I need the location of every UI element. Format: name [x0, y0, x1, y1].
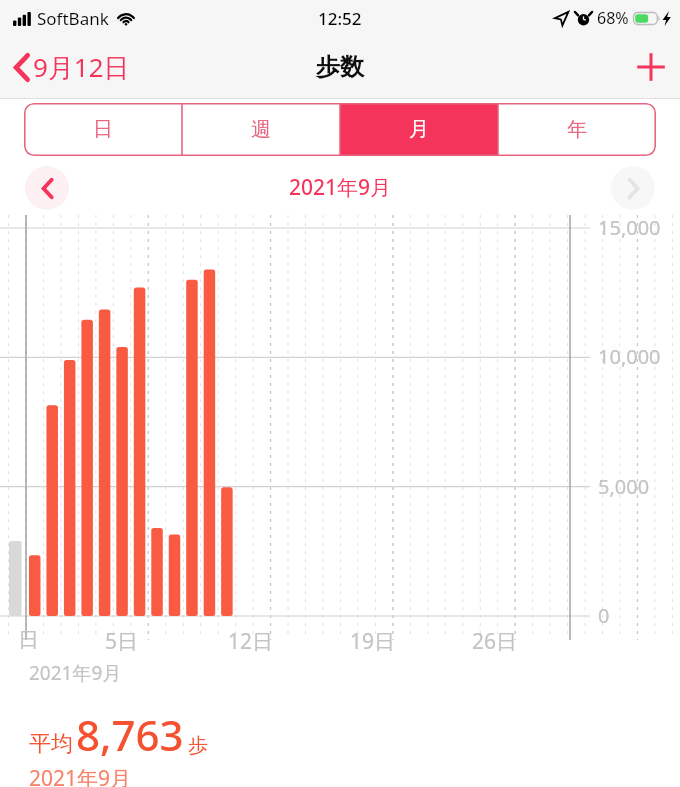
button[interactable]: 月 — [340, 103, 498, 156]
staticText: 12:52 — [318, 7, 362, 30]
button[interactable]: 週 — [182, 103, 340, 156]
staticText: SoftBank — [37, 7, 109, 30]
staticText: 15,000 — [598, 214, 661, 241]
staticText: 19日 — [350, 627, 396, 656]
staticText: 26日 — [472, 627, 518, 656]
staticText: 9月12日 — [33, 49, 130, 85]
button[interactable]: 日 — [24, 103, 182, 156]
staticText: 年 — [567, 117, 587, 142]
staticText: 5,000 — [598, 473, 650, 500]
staticText: 日 — [18, 627, 39, 653]
button[interactable]: Previous month — [25, 166, 69, 210]
staticText: 2021年9月 — [29, 764, 132, 787]
staticText: 12日 — [228, 627, 274, 656]
staticText: 0 — [598, 602, 610, 629]
staticText: 平均 — [29, 730, 73, 758]
staticText: 歩数 — [316, 52, 364, 82]
staticText: 月 — [409, 117, 429, 142]
button[interactable]: Next month — [611, 166, 655, 210]
staticText: 2021年9月 — [29, 660, 122, 686]
staticText: 週 — [251, 117, 271, 142]
staticText: 8,763 — [76, 706, 184, 763]
staticText: 歩 — [188, 733, 208, 758]
staticText: 68% — [597, 7, 629, 29]
staticText: 2021年9月 — [289, 173, 392, 202]
staticText: 10,000 — [598, 343, 661, 370]
button[interactable]: 年 — [498, 103, 656, 156]
button[interactable]: Add data — [622, 42, 680, 92]
staticText: 日 — [93, 117, 113, 142]
button[interactable]: 9月12日 — [0, 41, 140, 93]
staticText: 5日 — [105, 627, 139, 656]
